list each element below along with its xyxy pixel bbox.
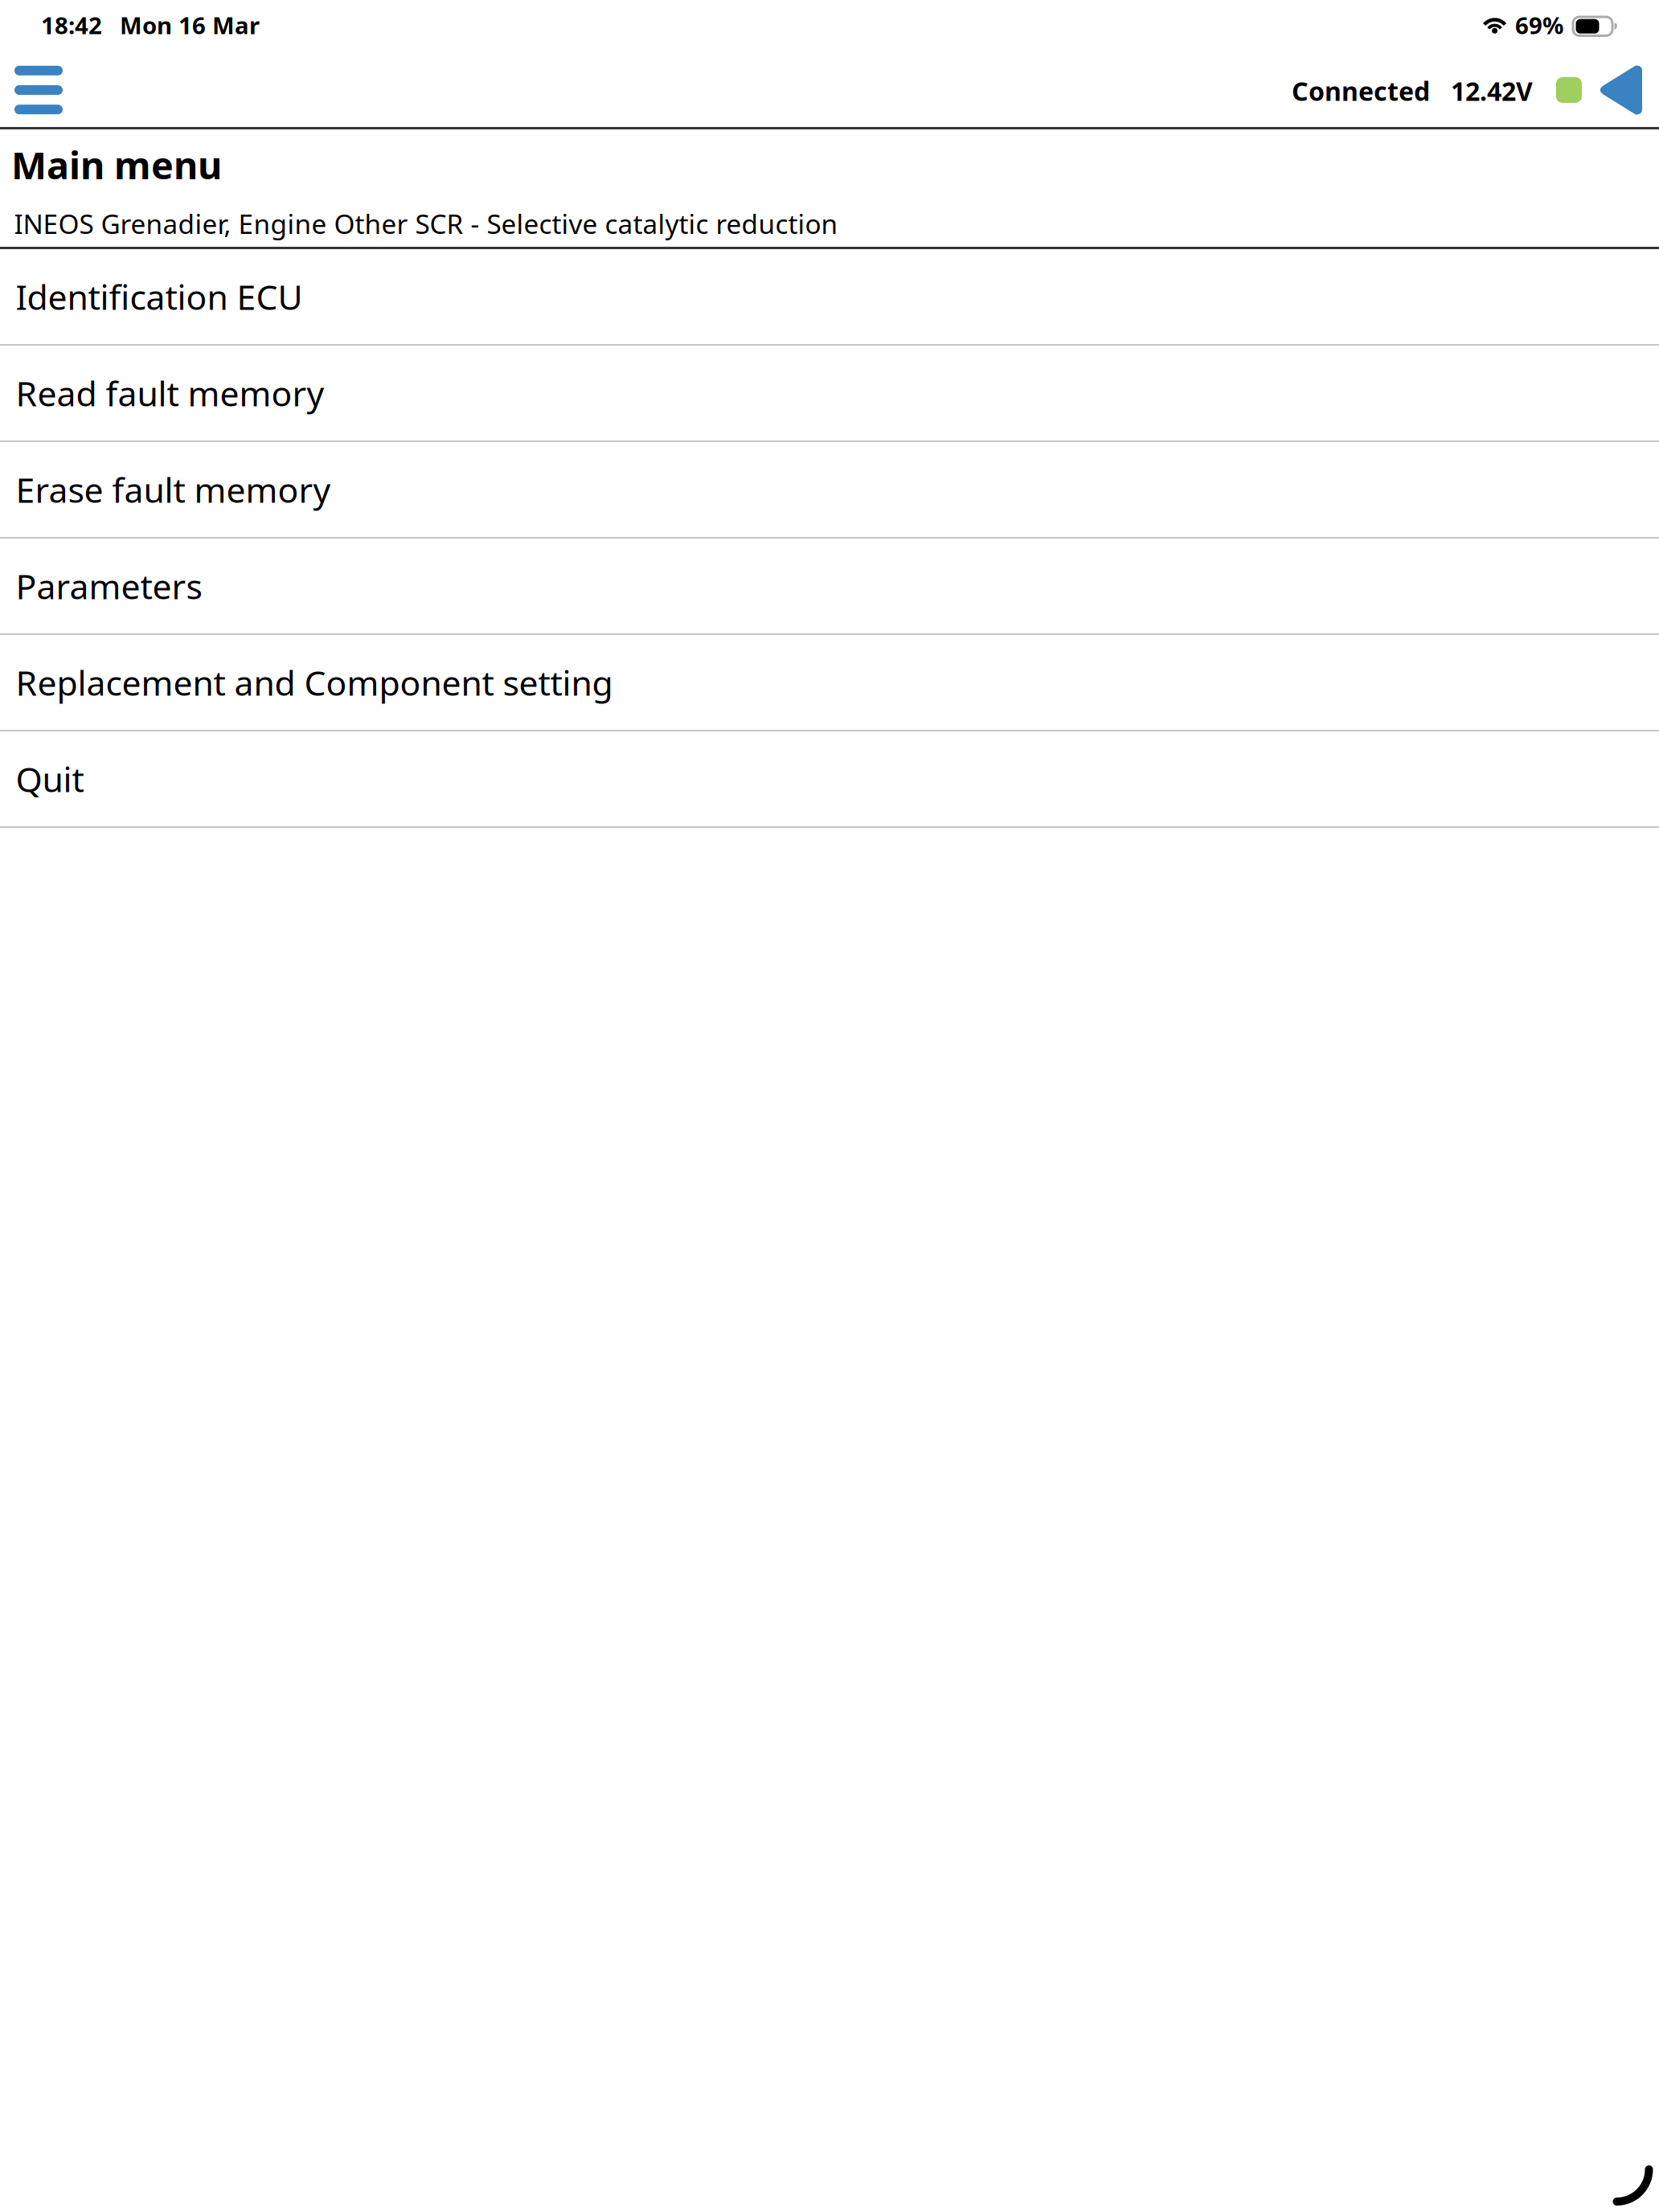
staticText: Mon 16 Mar [120, 9, 260, 41]
staticText: Quit [16, 756, 84, 802]
button[interactable]: Quit [0, 731, 1659, 826]
staticText: Erase fault memory [16, 467, 331, 512]
staticText: 12.42V [1451, 74, 1533, 108]
button[interactable]: Parameters [0, 539, 1659, 633]
button[interactable]: Back [1599, 48, 1659, 127]
button[interactable]: Read fault memory [0, 346, 1659, 440]
button[interactable]: Menu [0, 48, 84, 127]
staticText: Parameters [16, 563, 202, 609]
staticText: Identification ECU [16, 274, 303, 319]
staticText: Replacement and Component setting [16, 660, 613, 705]
staticText: Connected [1292, 74, 1430, 108]
staticText: Read fault memory [16, 370, 324, 416]
button[interactable]: Replacement and Component setting [0, 635, 1659, 730]
staticText: 18:42 [41, 9, 102, 41]
staticText: Main menu [11, 140, 222, 190]
button[interactable]: Identification ECU [0, 249, 1659, 344]
button[interactable]: Erase fault memory [0, 442, 1659, 537]
staticText: INEOS Grenadier, Engine Other SCR - Sele… [14, 206, 838, 241]
staticText: 69% [1515, 9, 1563, 41]
